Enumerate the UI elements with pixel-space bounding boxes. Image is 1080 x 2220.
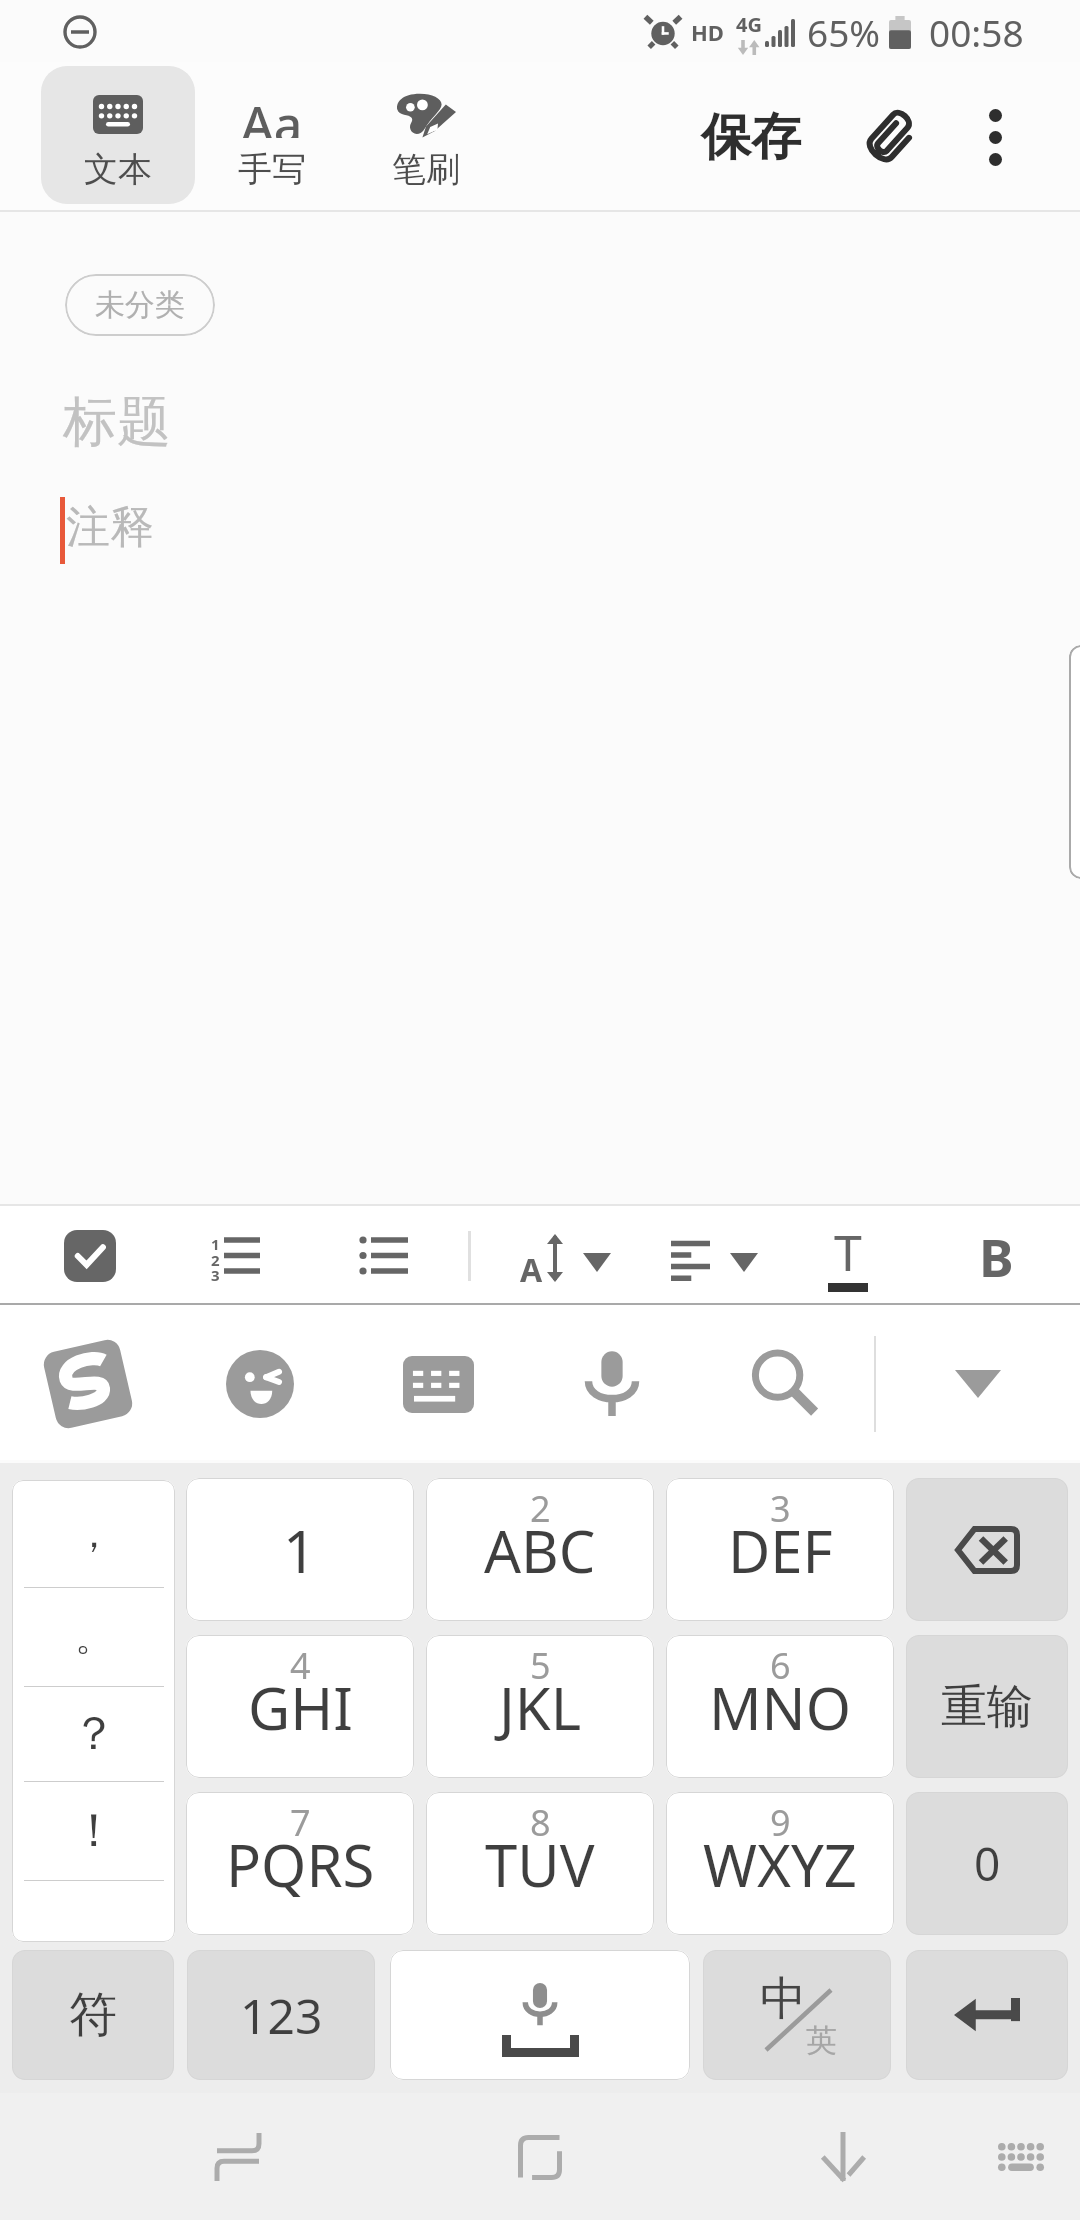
- button[interactable]: 0: [906, 1792, 1068, 1935]
- staticText: 0: [974, 1832, 1001, 1895]
- staticText: 123: [240, 1983, 323, 2048]
- button[interactable]: ！: [12, 1781, 175, 1880]
- button[interactable]: Open panel: [1069, 645, 1080, 879]
- staticText: 65%: [807, 7, 881, 57]
- staticText: Aa: [241, 90, 303, 138]
- button[interactable]: 8: [426, 1792, 654, 1935]
- staticText: MNO: [709, 1668, 851, 1747]
- staticText: 9: [770, 1798, 791, 1847]
- button[interactable]: 7: [186, 1792, 414, 1935]
- button[interactable]: Search: [730, 1329, 840, 1439]
- button[interactable]: 4: [186, 1635, 414, 1778]
- staticText: GHI: [248, 1668, 353, 1747]
- button[interactable]: More options: [949, 91, 1041, 183]
- button[interactable]: 123: [187, 1950, 375, 2080]
- staticText: ？: [71, 1705, 117, 1763]
- button[interactable]: Back: [793, 2107, 893, 2207]
- staticText: JKL: [499, 1668, 582, 1747]
- button[interactable]: Bold: [958, 1220, 1034, 1292]
- button[interactable]: Keyboard layout: [383, 1329, 493, 1439]
- button[interactable]: Numbered list: [196, 1224, 276, 1288]
- button[interactable]: 保存: [686, 92, 816, 182]
- button[interactable]: ？: [12, 1686, 175, 1781]
- staticText: HD: [691, 17, 724, 47]
- staticText: PQRS: [226, 1825, 375, 1904]
- staticText: 注释: [66, 500, 154, 555]
- button[interactable]: Bulleted list: [344, 1224, 424, 1288]
- button[interactable]: Voice input: [557, 1329, 667, 1439]
- button[interactable]: Switch keyboard: [971, 2107, 1071, 2207]
- button[interactable]: 笔刷: [349, 66, 503, 204]
- button[interactable]: Checklist: [64, 1230, 116, 1282]
- button[interactable]: Collapse: [56, 8, 104, 56]
- button[interactable]: Hide keyboard: [923, 1329, 1033, 1439]
- staticText: B: [979, 1221, 1014, 1292]
- staticText: 英: [806, 2021, 837, 2060]
- staticText: ABC: [484, 1511, 596, 1590]
- staticText: T: [834, 1218, 862, 1286]
- staticText: 4: [290, 1641, 311, 1690]
- staticText: 3: [211, 1265, 220, 1285]
- button[interactable]: Emoji: [205, 1329, 315, 1439]
- staticText: 1: [211, 1234, 220, 1254]
- staticText: 中: [760, 1970, 806, 2028]
- staticText: ，: [75, 1510, 113, 1558]
- staticText: 2: [211, 1250, 220, 1270]
- button[interactable]: Text style: [810, 1218, 886, 1298]
- staticText: WXYZ: [703, 1825, 857, 1904]
- staticText: 00:58: [929, 7, 1024, 57]
- staticText: 3: [770, 1484, 791, 1533]
- button[interactable]: Home: [490, 2107, 590, 2207]
- button[interactable]: 符: [12, 1950, 174, 2080]
- staticText: 2: [530, 1484, 551, 1533]
- button[interactable]: 。: [12, 1587, 175, 1686]
- staticText: 7: [290, 1798, 311, 1847]
- button[interactable]: Attach file: [846, 91, 938, 183]
- staticText: 文本: [84, 148, 152, 191]
- button[interactable]: ，: [12, 1480, 175, 1587]
- staticText: 保存: [701, 106, 801, 169]
- staticText: 4G: [736, 11, 762, 38]
- button[interactable]: Recents: [188, 2107, 288, 2207]
- button[interactable]: Sogou input: [33, 1329, 143, 1439]
- button[interactable]: Delete: [906, 1478, 1068, 1621]
- button[interactable]: 重输: [906, 1635, 1068, 1778]
- staticText: 5: [530, 1641, 551, 1690]
- staticText: ！: [71, 1802, 117, 1860]
- button[interactable]: 6: [666, 1635, 894, 1778]
- button[interactable]: Enter: [906, 1950, 1068, 2080]
- button[interactable]: Font size: [508, 1220, 628, 1292]
- button[interactable]: Aa: [195, 66, 349, 204]
- button[interactable]: 文本: [41, 66, 195, 204]
- button[interactable]: Space: [390, 1950, 690, 2080]
- staticText: TUV: [485, 1825, 595, 1904]
- staticText: 符: [69, 1985, 117, 2045]
- button[interactable]: 5: [426, 1635, 654, 1778]
- staticText: 未分类: [95, 286, 185, 324]
- staticText: 1: [283, 1511, 317, 1590]
- staticText: 6: [770, 1641, 791, 1690]
- staticText: 重输: [941, 1678, 1033, 1736]
- staticText: A: [520, 1248, 543, 1292]
- button[interactable]: 3: [666, 1478, 894, 1621]
- staticText: 。: [75, 1613, 113, 1661]
- button[interactable]: 9: [666, 1792, 894, 1935]
- staticText: 笔刷: [392, 148, 460, 191]
- button[interactable]: 2: [426, 1478, 654, 1621]
- button[interactable]: Text alignment: [660, 1220, 780, 1292]
- staticText: 手写: [238, 148, 306, 191]
- staticText: 8: [530, 1798, 551, 1847]
- staticText: DEF: [728, 1511, 833, 1590]
- staticText: 标题: [63, 388, 171, 456]
- button[interactable]: 1: [186, 1478, 414, 1621]
- button[interactable]: 未分类: [65, 274, 215, 336]
- button[interactable]: Chinese English toggle: [703, 1950, 891, 2080]
